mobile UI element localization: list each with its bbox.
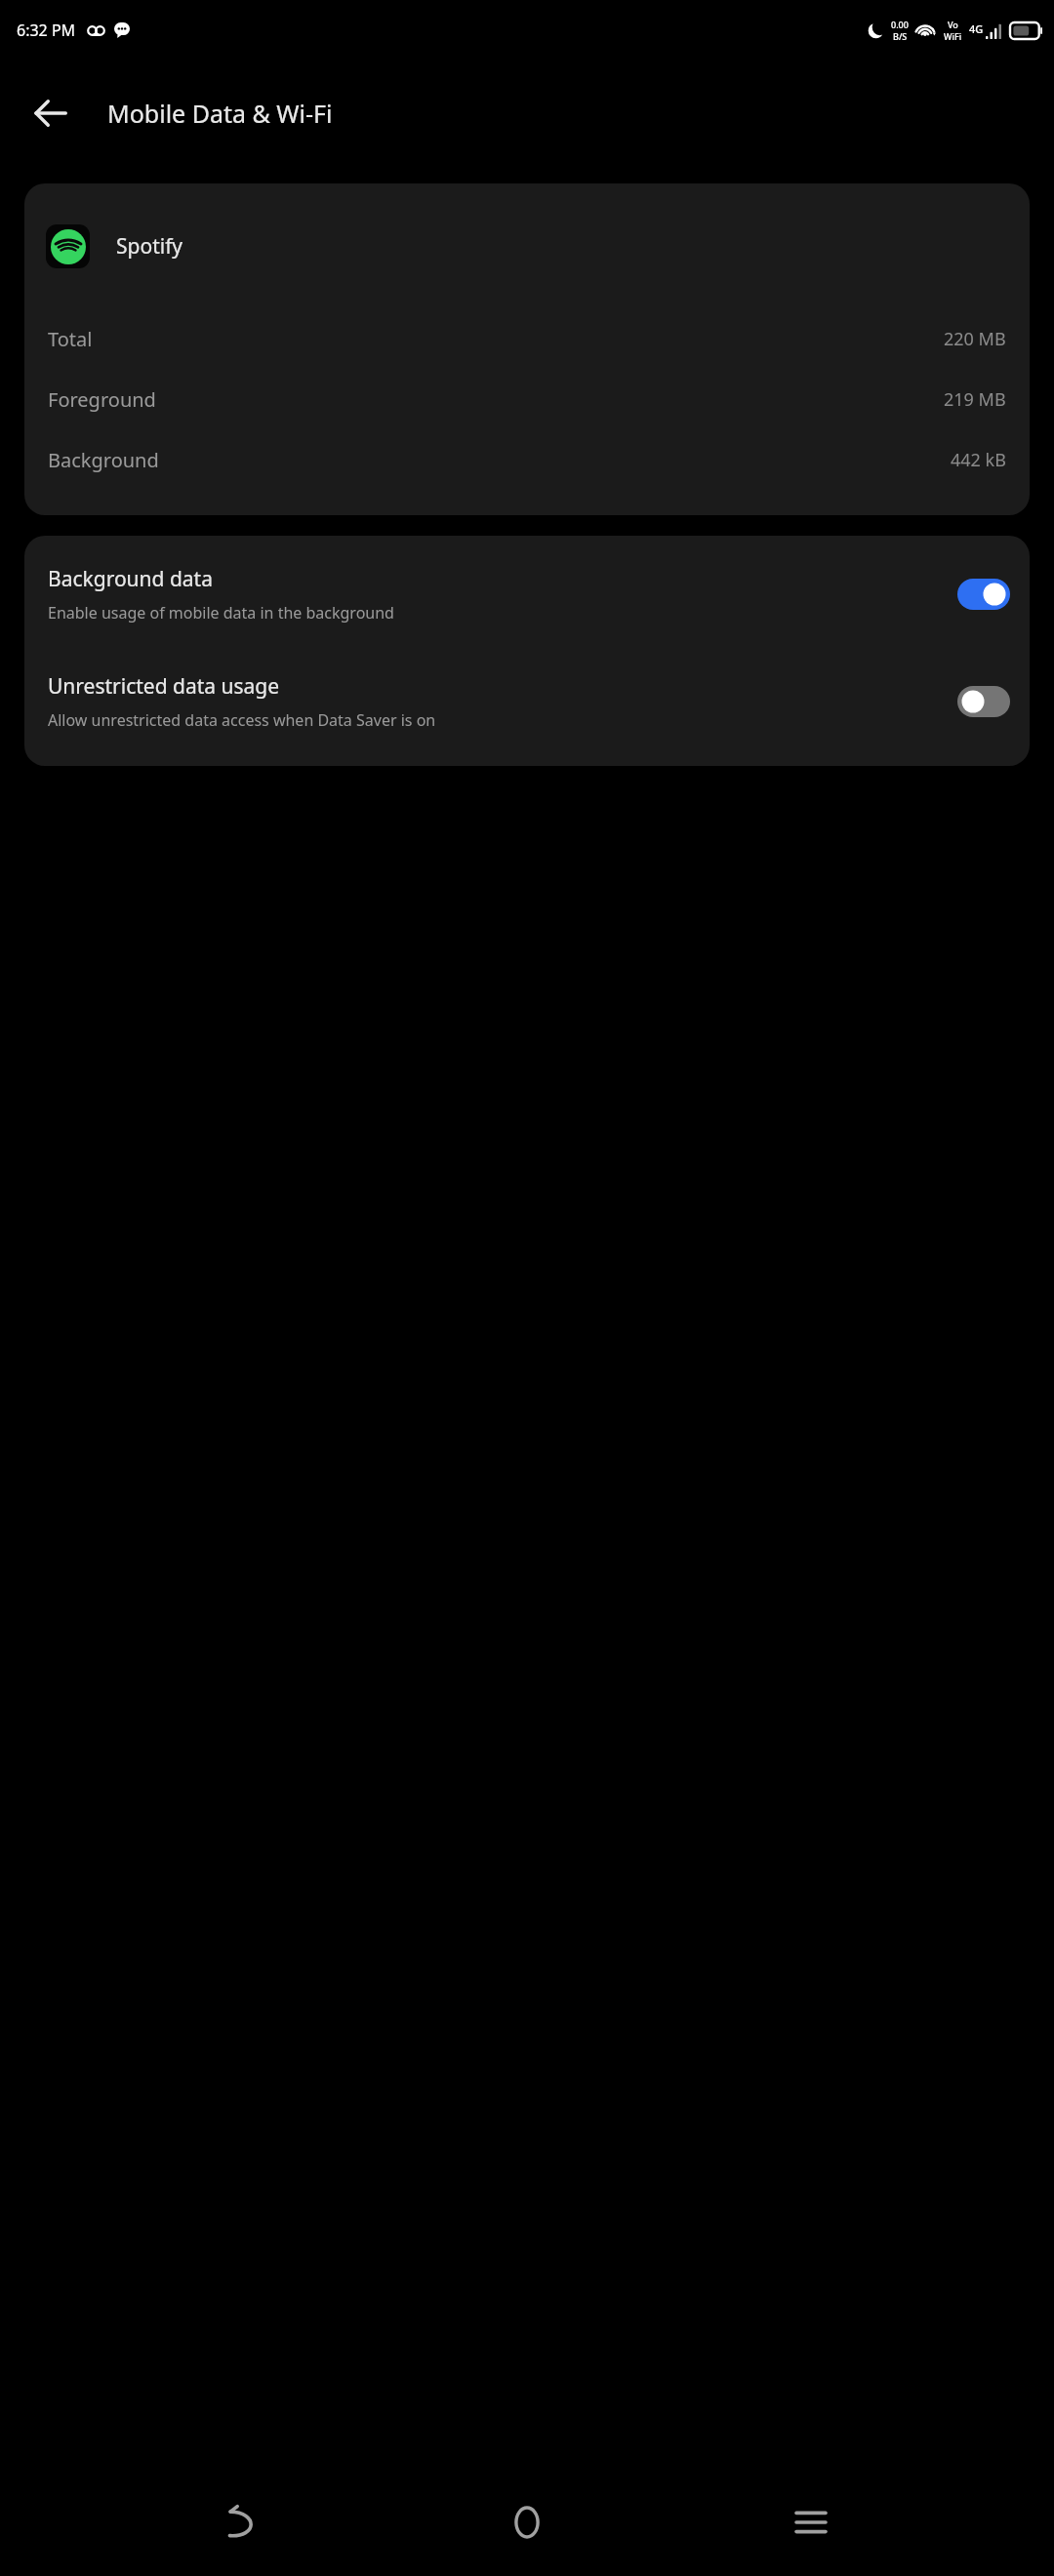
- staticText: Foreground: [48, 386, 156, 413]
- staticText: B/S: [893, 30, 908, 42]
- button[interactable]: Background data: [24, 555, 1030, 633]
- button[interactable]: Unrestricted data usage: [24, 663, 1030, 741]
- button[interactable]: Foreground: [24, 369, 1030, 429]
- staticText: 220 MB: [944, 327, 1006, 351]
- button[interactable]: Spotify: [24, 183, 1030, 308]
- button[interactable]: Total: [24, 308, 1030, 369]
- staticText: Total: [48, 326, 93, 352]
- button[interactable]: Recent apps: [770, 2481, 852, 2563]
- staticText: Background: [48, 447, 159, 473]
- staticText: WiFi: [944, 30, 962, 42]
- button[interactable]: Off: [957, 686, 1010, 717]
- staticText: Mobile Data & Wi-Fi: [107, 97, 333, 130]
- button[interactable]: Home: [486, 2481, 568, 2563]
- staticText: Allow unrestricted data access when Data…: [48, 709, 436, 731]
- staticText: 0.00: [891, 19, 909, 30]
- button[interactable]: Back: [20, 82, 82, 144]
- staticText: Unrestricted data usage: [48, 672, 280, 701]
- button[interactable]: Back: [202, 2481, 284, 2563]
- staticText: Vo: [948, 19, 958, 30]
- staticText: Spotify: [116, 232, 183, 261]
- button[interactable]: Background: [24, 429, 1030, 490]
- staticText: 4G: [969, 21, 984, 36]
- staticText: Background data: [48, 565, 213, 593]
- staticText: 442 kB: [951, 448, 1006, 472]
- staticText: Enable usage of mobile data in the backg…: [48, 602, 394, 624]
- staticText: 6:32 PM: [17, 20, 76, 41]
- button[interactable]: On: [957, 579, 1010, 610]
- staticText: 219 MB: [944, 387, 1006, 412]
